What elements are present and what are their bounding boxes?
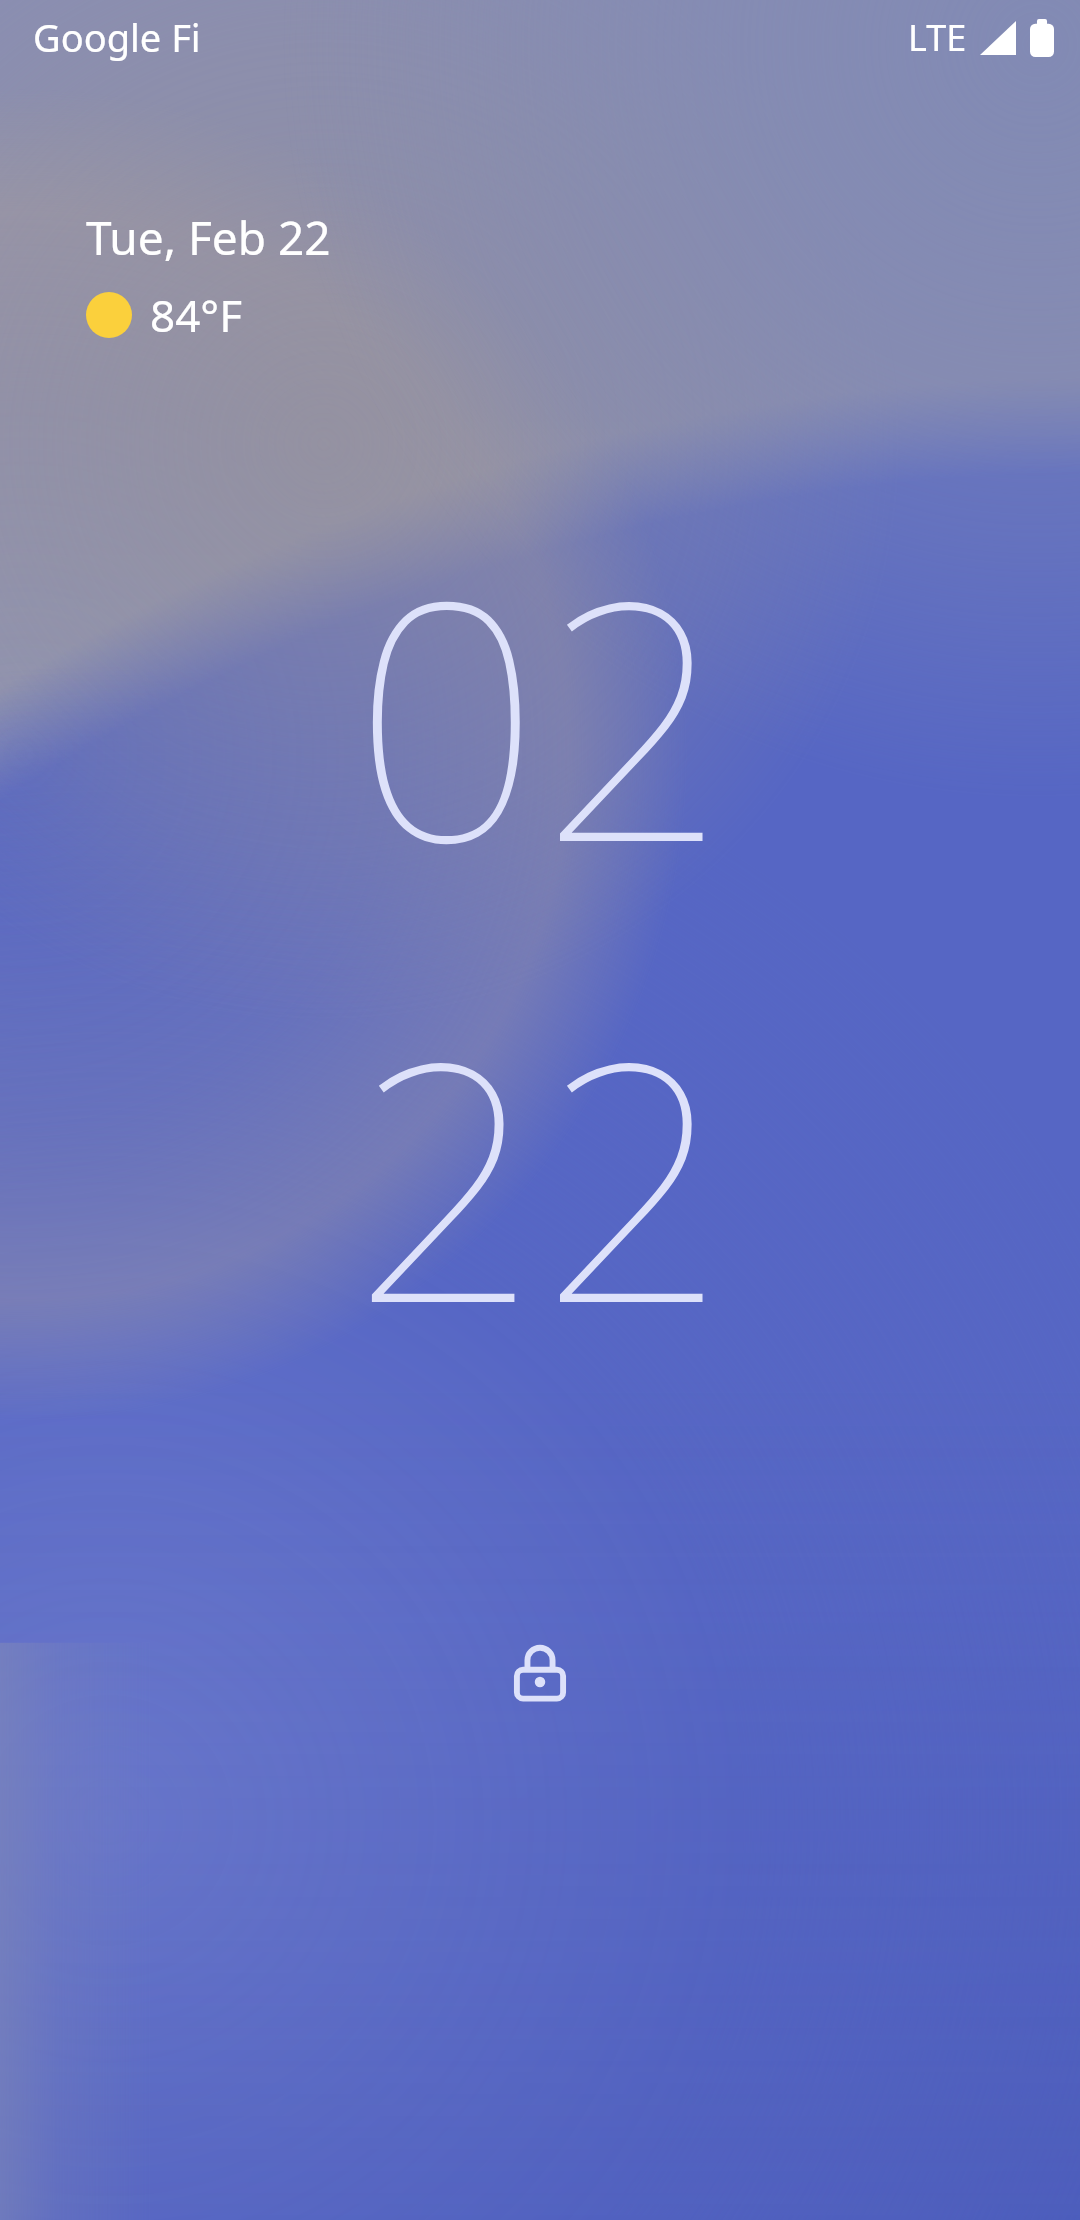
button[interactable]: 02	[0, 488, 1080, 1398]
staticText: 02	[352, 488, 729, 937]
staticText: 22	[352, 949, 729, 1398]
staticText: 84°F	[150, 285, 243, 345]
staticText: Google Fi	[33, 11, 201, 63]
button[interactable]: Weather, 84 degrees Fahrenheit, sunny	[86, 285, 243, 345]
button[interactable]: Tue, Feb 22	[86, 206, 331, 269]
button[interactable]: Locked, swipe up to unlock	[492, 1625, 588, 1721]
staticText: LTE	[908, 13, 967, 62]
